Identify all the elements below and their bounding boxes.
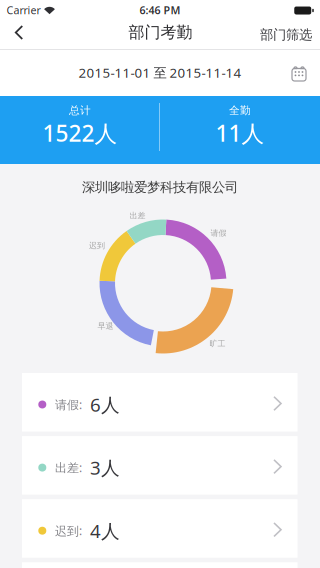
button[interactable]: 迟到: [22, 499, 297, 558]
staticText: 6:46 PM [139, 3, 180, 17]
staticText: 3人 [90, 455, 120, 480]
staticText: 迟到 [89, 241, 105, 250]
staticText: 4人 [90, 518, 120, 543]
staticText: 总计 [69, 104, 91, 117]
button[interactable]: Calendar [287, 61, 311, 85]
staticText: 部门考勤 [128, 23, 192, 42]
staticText: 深圳哆啦爱梦科技有限公司 [82, 179, 238, 195]
staticText: 6人 [90, 392, 120, 417]
staticText: 请假: [55, 396, 82, 412]
staticText: 1522人 [42, 118, 117, 148]
staticText: 出差 [129, 211, 145, 220]
staticText: 11人 [215, 118, 264, 148]
button[interactable]: 请假: [22, 373, 297, 431]
button[interactable]: Back [0, 20, 44, 49]
staticText: Carrier [6, 3, 40, 17]
staticText: 旷工 [209, 339, 225, 348]
staticText: 全勤 [229, 104, 251, 117]
button[interactable]: 部门筛选 [252, 20, 320, 49]
staticText: 早退 [97, 321, 113, 331]
staticText: 请假 [210, 228, 226, 238]
staticText: 部门筛选 [260, 27, 312, 43]
staticText: 迟到: [55, 523, 82, 539]
staticText: 2015-11-01 至 2015-11-14 [78, 64, 241, 81]
button[interactable]: 出差: [22, 436, 297, 495]
staticText: 出差: [55, 460, 82, 475]
